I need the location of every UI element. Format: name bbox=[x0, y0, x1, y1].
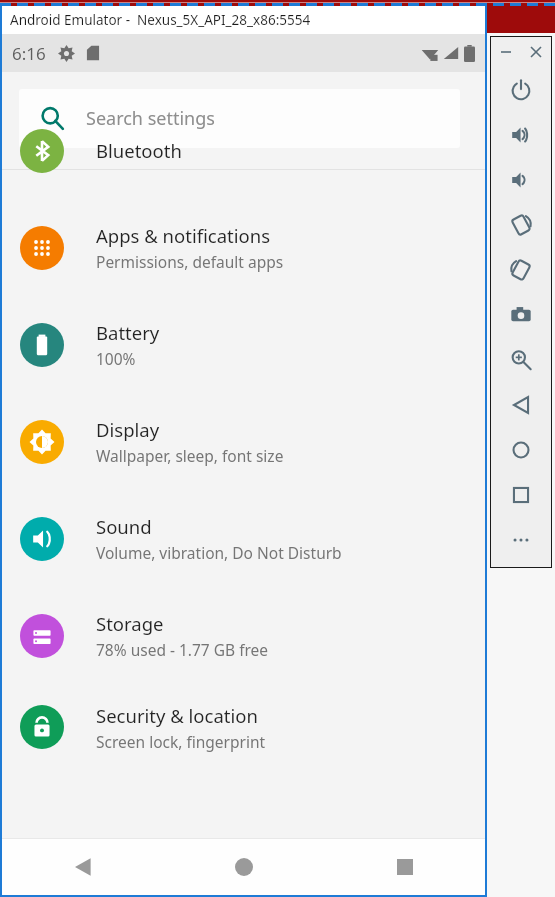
button[interactable]: Back bbox=[491, 382, 551, 427]
staticText: Search settings bbox=[86, 106, 215, 131]
button[interactable]: Display bbox=[2, 393, 485, 490]
button[interactable]: Screenshot bbox=[491, 292, 551, 337]
button[interactable]: Rotate right bbox=[491, 247, 551, 292]
staticText: 78% used - 1.77 GB free bbox=[96, 639, 269, 660]
button[interactable]: Zoom bbox=[491, 337, 551, 382]
button[interactable]: Back bbox=[2, 838, 163, 895]
button[interactable]: Battery bbox=[2, 296, 485, 393]
button[interactable]: Close bbox=[521, 37, 551, 67]
button[interactable]: Apps & notifications bbox=[2, 199, 485, 296]
button[interactable]: Rotate left bbox=[491, 202, 551, 247]
button[interactable]: Recent apps bbox=[324, 838, 485, 895]
button[interactable]: Volume down bbox=[491, 157, 551, 202]
button[interactable]: More bbox=[491, 517, 551, 562]
button[interactable]: Security & location bbox=[2, 684, 485, 770]
staticText: Wallpaper, sleep, font size bbox=[96, 445, 284, 466]
staticText: Permissions, default apps bbox=[96, 251, 284, 272]
staticText: 100% bbox=[96, 348, 136, 369]
button[interactable]: Overview bbox=[491, 472, 551, 517]
button[interactable]: Power bbox=[491, 67, 551, 112]
staticText: 6:16 bbox=[12, 42, 46, 65]
staticText: Bluetooth bbox=[96, 138, 182, 163]
button[interactable]: Search settings bbox=[19, 89, 460, 148]
button[interactable]: Minimize bbox=[491, 37, 521, 67]
staticText: Sound bbox=[96, 514, 152, 539]
button[interactable]: Home bbox=[163, 838, 324, 895]
button[interactable]: Home bbox=[491, 427, 551, 472]
staticText: Battery bbox=[96, 320, 160, 345]
staticText: Volume, vibration, Do Not Disturb bbox=[96, 542, 342, 563]
staticText: Apps & notifications bbox=[96, 223, 271, 248]
button[interactable]: Storage bbox=[2, 587, 485, 684]
button[interactable]: Sound bbox=[2, 490, 485, 587]
staticText: Storage bbox=[96, 611, 164, 636]
staticText: Display bbox=[96, 417, 160, 442]
staticText: Screen lock, fingerprint bbox=[96, 731, 266, 752]
button[interactable]: Volume up bbox=[491, 112, 551, 157]
staticText: Android Emulator - Nexus_5X_API_28_x86:5… bbox=[10, 11, 311, 29]
staticText: Security & location bbox=[96, 703, 258, 728]
button[interactable]: Bluetooth bbox=[2, 102, 485, 199]
